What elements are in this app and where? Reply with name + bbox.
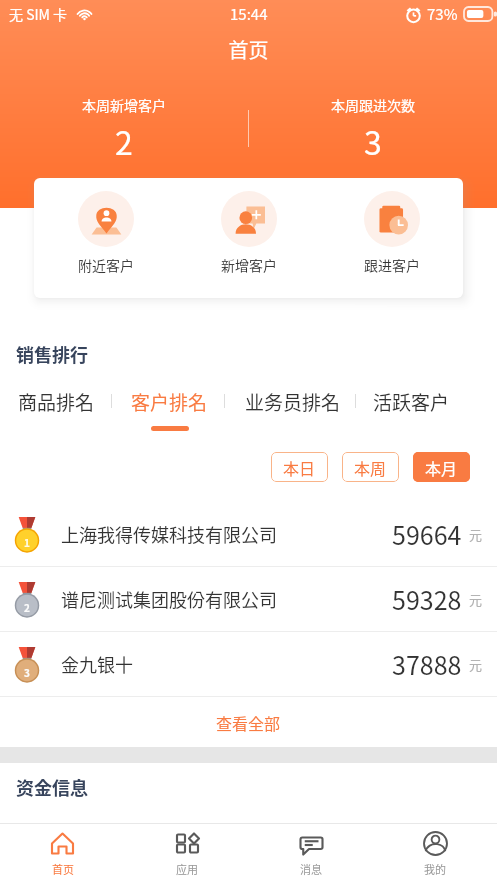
staticText: 59328 xyxy=(392,581,462,617)
staticText: 本周 xyxy=(354,456,387,479)
staticText: 商品排名 xyxy=(18,388,95,416)
staticText: 消息 xyxy=(300,861,322,877)
button[interactable]: 首页 xyxy=(0,831,125,877)
staticText: 元 xyxy=(469,525,483,544)
staticText: 本月 xyxy=(425,456,458,479)
staticText: 应用 xyxy=(176,861,198,877)
staticText: 1 xyxy=(24,535,30,549)
button[interactable]: 活跃客户 xyxy=(373,388,450,431)
staticText: 谱尼测试集团股份有限公司 xyxy=(61,586,277,612)
staticText: 59664 xyxy=(392,516,462,552)
staticText: 本日 xyxy=(283,456,316,479)
staticText: 客户排名 xyxy=(131,388,208,416)
button[interactable]: 应用 xyxy=(125,831,249,877)
staticText: 活跃客户 xyxy=(373,388,450,416)
staticText: 本周跟进次数 xyxy=(331,95,415,115)
staticText: 元 xyxy=(469,655,483,674)
staticText: 3 xyxy=(364,118,382,164)
button[interactable]: 商品排名 xyxy=(18,388,95,431)
button[interactable]: 本日 xyxy=(271,452,328,482)
staticText: 资金信息 xyxy=(16,774,88,800)
staticText: 2 xyxy=(24,600,30,614)
staticText: 首页 xyxy=(0,35,497,64)
staticText: 销售排行 xyxy=(16,341,88,367)
button[interactable]: 本周跟进次数 xyxy=(248,95,497,164)
staticText: 查看全部 xyxy=(216,711,281,734)
button[interactable]: 2 xyxy=(0,567,497,631)
staticText: 元 xyxy=(469,590,483,609)
staticText: 新增客户 xyxy=(221,255,277,275)
staticText: 37888 xyxy=(392,646,462,682)
button[interactable]: 消息 xyxy=(249,831,373,877)
button[interactable]: 本月 xyxy=(413,452,470,482)
button[interactable]: 本周 xyxy=(342,452,399,482)
staticText: 73% xyxy=(427,3,458,25)
button[interactable]: 1 xyxy=(0,502,497,566)
button[interactable]: 客户排名 xyxy=(131,388,208,431)
staticText: 本周新增客户 xyxy=(82,95,166,115)
staticText: 附近客户 xyxy=(78,255,134,275)
staticText: 3 xyxy=(24,665,30,679)
staticText: 业务员排名 xyxy=(245,388,341,416)
button[interactable]: 新增客户 xyxy=(177,191,320,275)
button[interactable]: 跟进客户 xyxy=(320,191,463,275)
staticText: 2 xyxy=(115,118,133,164)
staticText: 上海我得传媒科技有限公司 xyxy=(61,521,277,547)
staticText: 无 SIM 卡 xyxy=(9,4,68,24)
button[interactable]: 本周新增客户 xyxy=(0,95,248,164)
button[interactable]: 查看全部 xyxy=(0,697,497,747)
staticText: 跟进客户 xyxy=(364,255,420,275)
button[interactable]: 我的 xyxy=(373,831,497,877)
button[interactable]: 3 xyxy=(0,632,497,696)
staticText: 首页 xyxy=(52,861,74,877)
button[interactable]: 业务员排名 xyxy=(245,388,341,431)
button[interactable]: 附近客户 xyxy=(34,191,177,275)
staticText: 我的 xyxy=(424,861,446,877)
staticText: 金九银十 xyxy=(61,651,133,677)
staticText: 15:44 xyxy=(230,3,268,25)
